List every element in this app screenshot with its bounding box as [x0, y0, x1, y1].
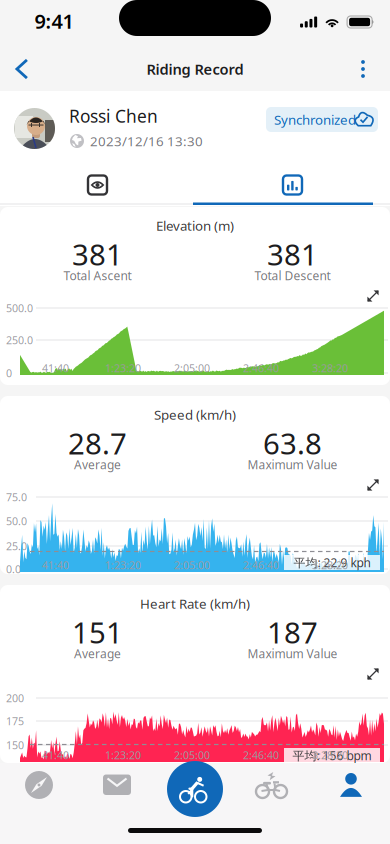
button[interactable]: Discover: [0, 759, 78, 811]
staticText: 500.0: [6, 301, 33, 315]
button[interactable]: Map view: [0, 167, 195, 203]
button[interactable]: Expand chart: [359, 285, 387, 307]
staticText: 41:40: [42, 558, 69, 572]
staticText: Heart Rate (km/h): [140, 595, 250, 612]
staticText: Total Descent: [254, 267, 330, 283]
staticText: 0.0: [6, 562, 21, 576]
staticText: 175: [6, 714, 24, 728]
button[interactable]: Synchronized: [266, 107, 378, 132]
staticText: 187: [267, 612, 318, 651]
staticText: 2:46:40: [243, 558, 279, 572]
staticText: 1:23:20: [105, 748, 141, 762]
staticText: Rossi Chen: [69, 104, 158, 127]
staticText: 63.8: [263, 423, 322, 462]
button[interactable]: Start ride: [156, 761, 234, 817]
staticText: Maximum Value: [247, 645, 337, 661]
button[interactable]: Messages: [78, 759, 156, 811]
staticText: 2:46:40: [243, 361, 279, 375]
staticText: 3:28:20: [312, 361, 348, 375]
staticText: 0: [6, 366, 12, 380]
button[interactable]: Chart view: [195, 167, 390, 203]
staticText: 28.7: [68, 423, 127, 462]
button[interactable]: Back: [0, 47, 44, 91]
button[interactable]: Expand chart: [359, 663, 387, 685]
staticText: Riding Record: [146, 59, 243, 79]
staticText: 50.0: [6, 514, 27, 528]
staticText: 25.0: [6, 539, 27, 553]
button[interactable]: My bikes: [234, 759, 312, 811]
staticText: Speed (km/h): [154, 406, 236, 423]
staticText: 200: [6, 691, 24, 705]
staticText: 41:40: [42, 748, 69, 762]
staticText: 381: [72, 234, 123, 273]
button[interactable]: More options: [341, 47, 385, 91]
staticText: Synchronized: [274, 111, 356, 128]
staticText: 9:41: [34, 8, 73, 34]
staticText: 2:05:00: [174, 748, 210, 762]
staticText: 2:46:40: [243, 748, 279, 762]
staticText: 75.0: [6, 490, 27, 504]
staticText: 2:05:00: [174, 361, 210, 375]
staticText: 平均: 22.9 kph: [293, 554, 370, 570]
staticText: 381: [267, 234, 318, 273]
staticText: Average: [74, 645, 121, 661]
staticText: 150: [6, 738, 24, 752]
staticText: 2:05:00: [174, 558, 210, 572]
staticText: Average: [74, 456, 121, 472]
staticText: 2023/12/16 13:30: [90, 132, 203, 150]
staticText: 3:28:20: [312, 558, 348, 572]
staticText: 3:28:20: [312, 748, 348, 762]
staticText: 平均: 156 bpm: [292, 747, 371, 763]
staticText: Maximum Value: [247, 456, 337, 472]
staticText: 151: [72, 612, 123, 651]
staticText: Total Ascent: [63, 267, 131, 283]
staticText: 41:40: [42, 361, 69, 375]
button[interactable]: Expand chart: [359, 474, 387, 496]
staticText: 1:23:20: [105, 558, 141, 572]
staticText: 1:23:20: [105, 361, 141, 375]
staticText: 250.0: [6, 333, 33, 347]
staticText: Elevation (m): [156, 217, 234, 234]
button[interactable]: Profile: [312, 759, 390, 811]
